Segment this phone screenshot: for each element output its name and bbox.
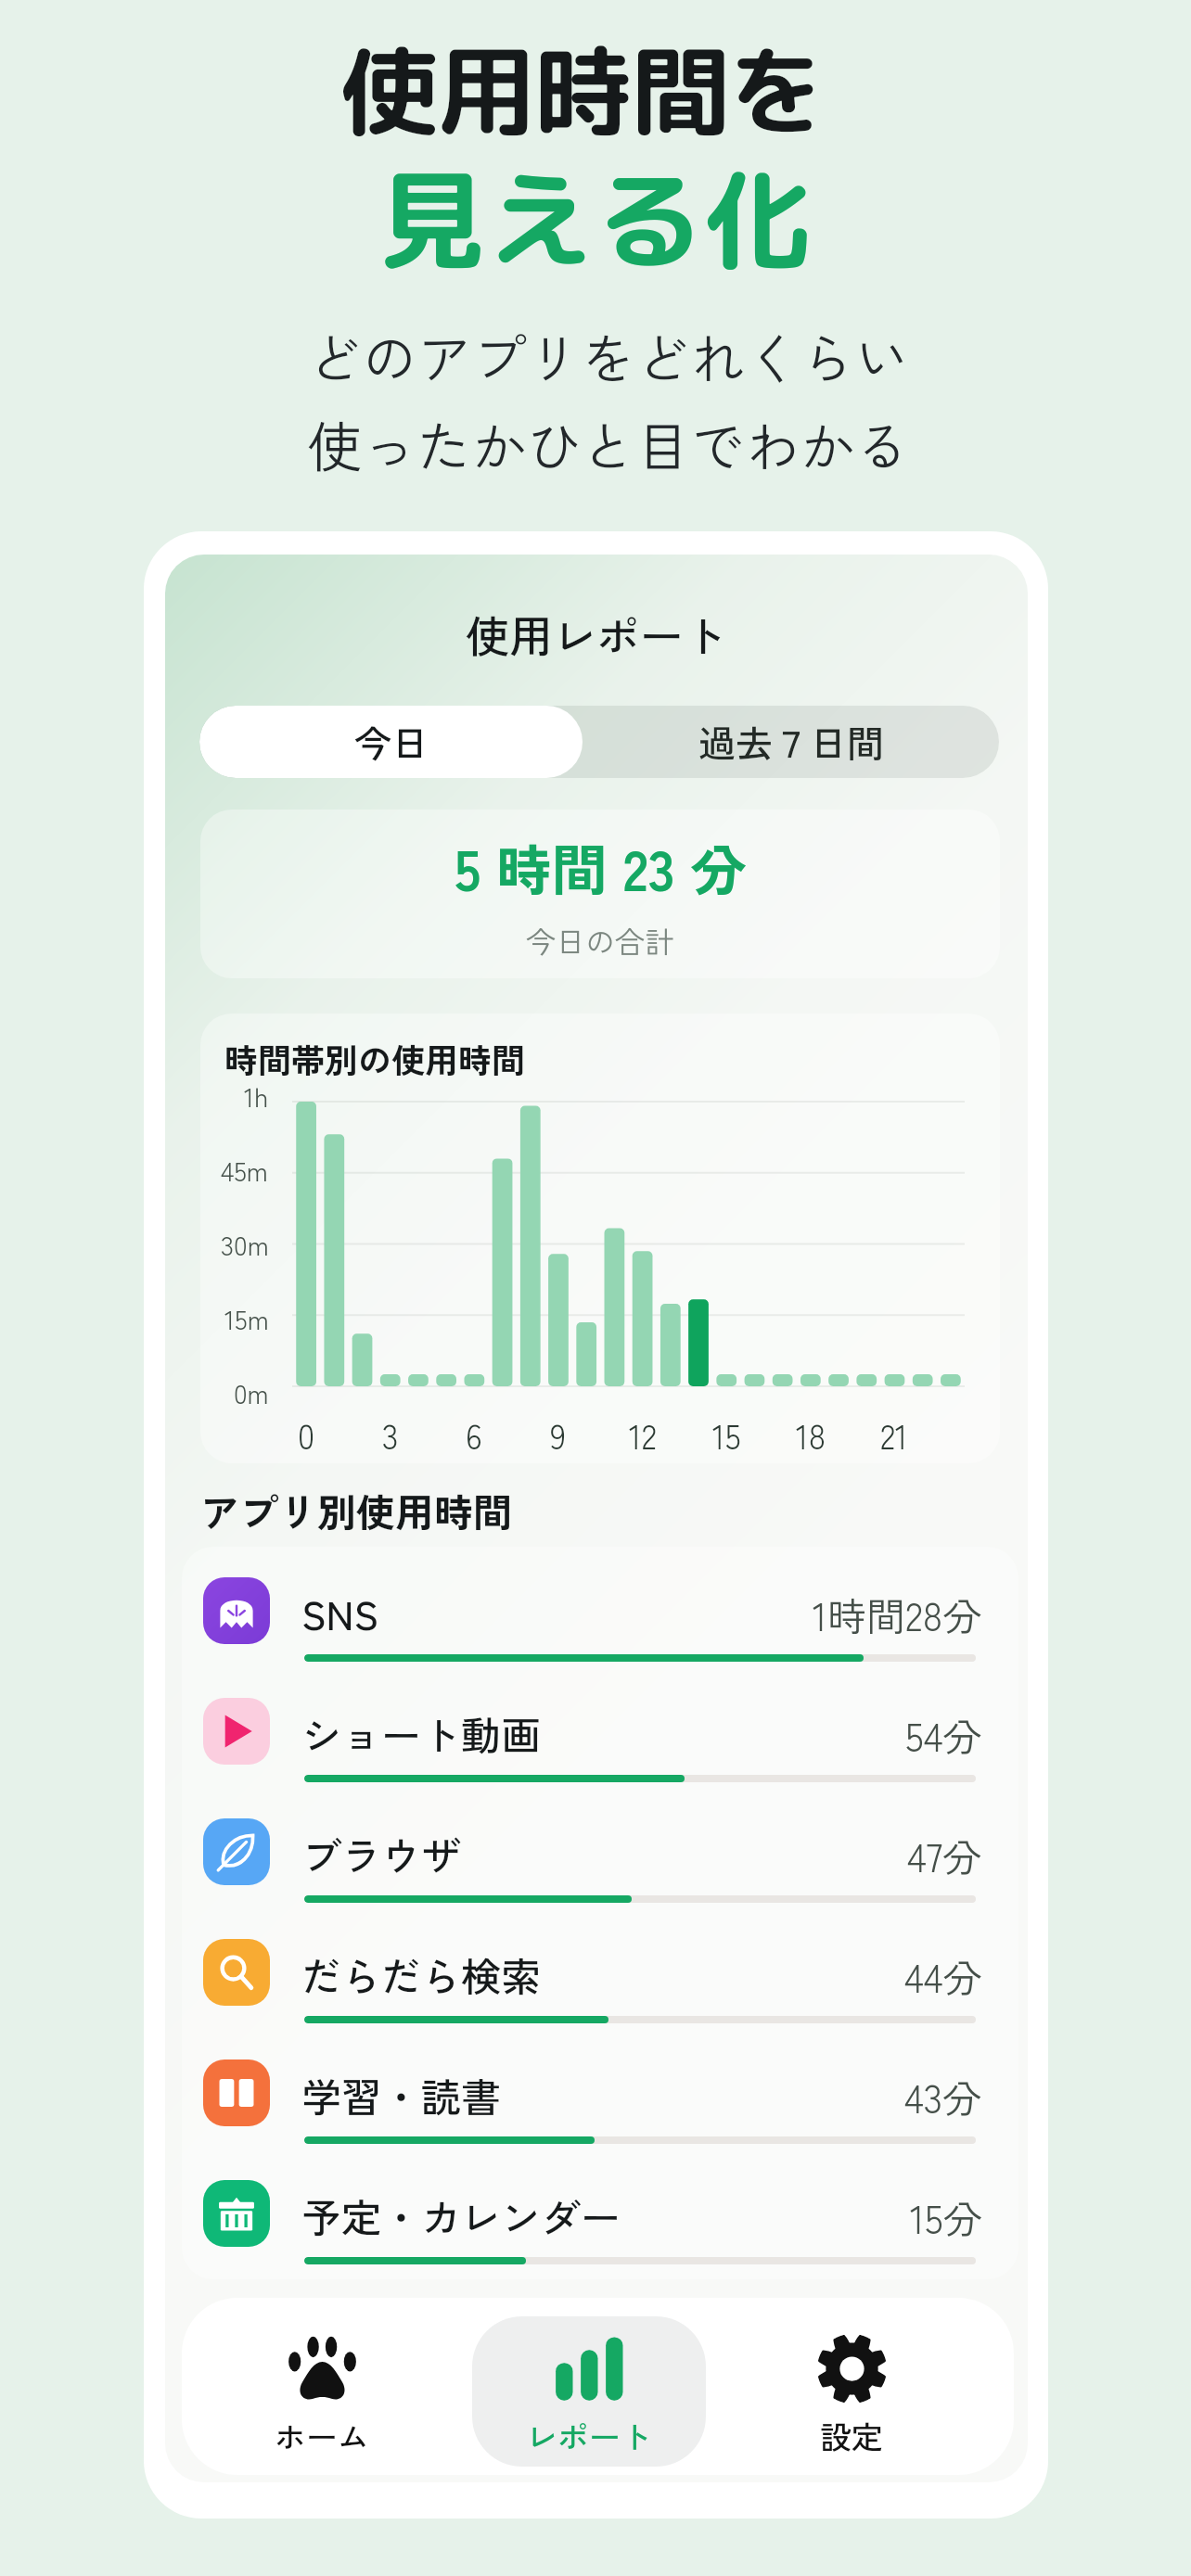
staticText: 6 [466, 1410, 482, 1459]
staticText: 設定 [820, 2413, 883, 2458]
staticText: 学習・読書 [301, 2066, 501, 2123]
staticText: 43分 [904, 2068, 982, 2124]
button[interactable]: SNS [182, 1561, 1018, 1676]
staticText: 15 [712, 1410, 741, 1459]
staticText: ショート動画 [301, 1704, 541, 1762]
button[interactable]: 今日 [199, 706, 583, 778]
button[interactable]: だらだら検索 [182, 1922, 1018, 2037]
staticText: 18 [796, 1410, 826, 1459]
staticText: ホーム [275, 2413, 369, 2458]
staticText: 予定・カレンダー [301, 2187, 621, 2244]
staticText: 0 [298, 1410, 315, 1459]
staticText: 過去７日間 [698, 715, 884, 769]
button[interactable]: 設定 [735, 2316, 968, 2467]
staticText: アプリ別使用時間 [200, 1482, 513, 1538]
staticText: 45m [221, 1150, 269, 1183]
staticText: 21 [880, 1410, 908, 1459]
staticText: 3 [382, 1410, 399, 1459]
staticText: 見える化 [0, 143, 1190, 294]
staticText: 15m [224, 1298, 269, 1332]
button[interactable]: レポート [472, 2316, 706, 2467]
staticText: 15分 [910, 2188, 982, 2245]
staticText: 9 [550, 1410, 567, 1459]
button[interactable]: 過去７日間 [583, 706, 999, 778]
button[interactable]: ホーム [205, 2316, 439, 2467]
staticText: 今日の合計 [526, 919, 675, 962]
staticText: 0m [234, 1372, 269, 1406]
staticText: 使用レポート [165, 602, 1028, 665]
button[interactable]: ブラウザ [182, 1802, 1018, 1917]
staticText: 使用時間を [0, 22, 1179, 158]
staticText: だらだら検索 [301, 1945, 541, 2003]
staticText: 1時間28分 [813, 1586, 982, 1642]
staticText: 時間帯別の使用時間 [224, 1034, 526, 1082]
staticText: 44分 [904, 1947, 982, 2004]
staticText: 今日 [354, 715, 429, 769]
staticText: 47分 [907, 1827, 982, 1883]
staticText: 1h [244, 1076, 269, 1109]
button[interactable]: 予定・カレンダー [182, 2163, 1018, 2278]
staticText: ブラウザ [301, 1825, 461, 1882]
button[interactable]: ショート動画 [182, 1681, 1018, 1796]
staticText: どのアプリをどれくらい 使ったかひと目でわかる [13, 316, 1191, 483]
staticText: 30m [221, 1224, 269, 1257]
button[interactable]: 学習・読書 [182, 2043, 1018, 2158]
staticText: レポート [526, 2413, 652, 2458]
staticText: 54分 [905, 1706, 982, 1763]
staticText: 5 時間 23 分 [455, 826, 747, 907]
staticText: SNS [301, 1584, 378, 1641]
staticText: 12 [629, 1410, 657, 1459]
